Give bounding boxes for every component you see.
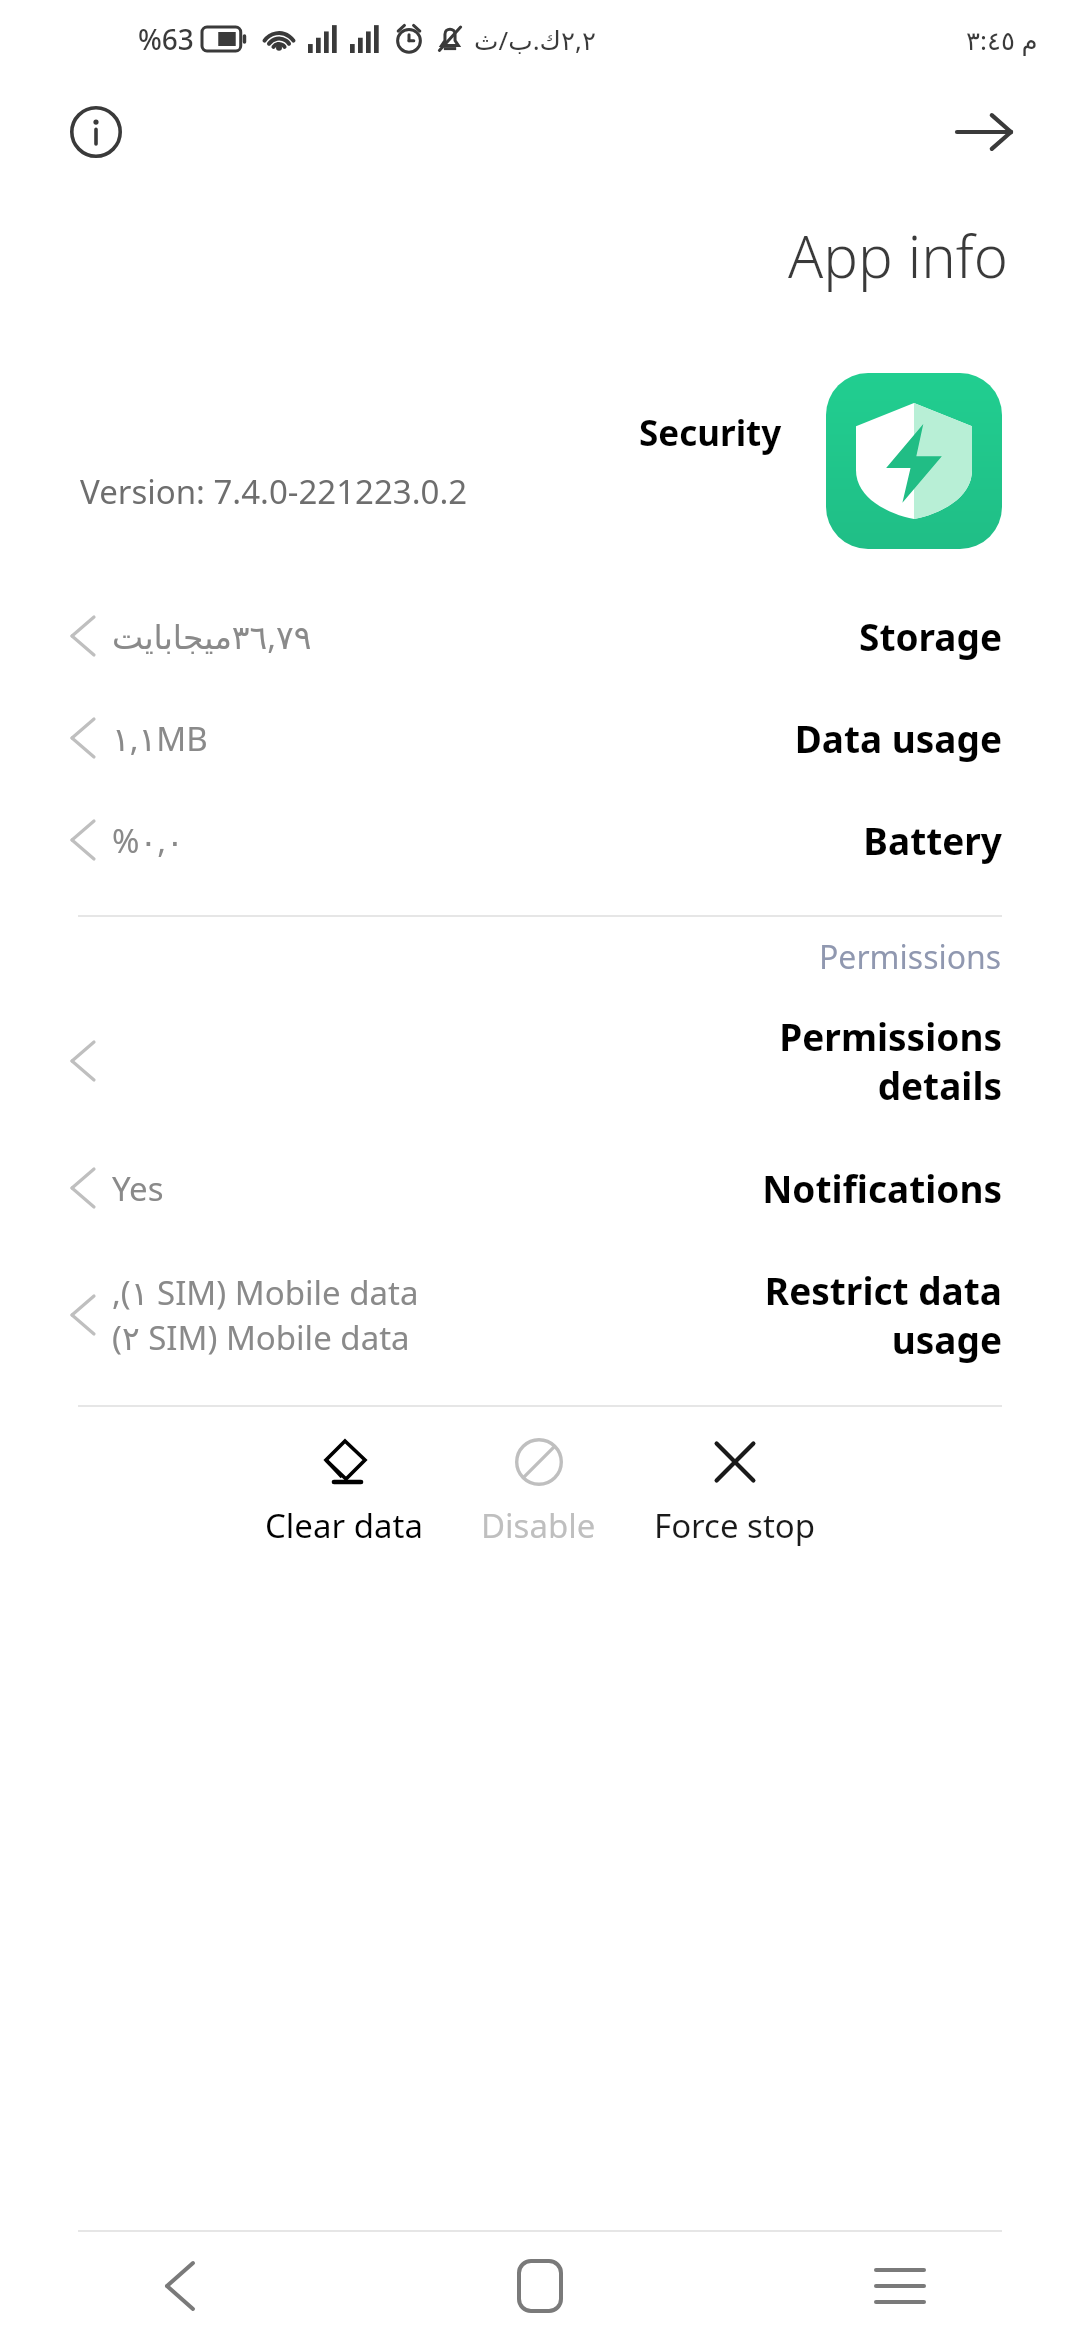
- staticText: م ٣:٤٥: [966, 22, 1038, 57]
- staticText: Security: [639, 409, 782, 457]
- staticText: Restrict data usage: [764, 1265, 1002, 1365]
- staticText: Storage: [858, 611, 1002, 661]
- button[interactable]: ,(١ SIM) Mobile data (٢ SIM) Mobile data: [0, 1239, 1080, 1391]
- button[interactable]: Home: [360, 2232, 720, 2340]
- staticText: Battery: [863, 815, 1002, 865]
- button[interactable]: Force stop: [648, 1431, 822, 1552]
- staticText: Notifications: [762, 1163, 1002, 1213]
- staticText: Yes: [112, 1166, 164, 1211]
- staticText: ٢,٢ك.ب/ث: [474, 22, 596, 57]
- button[interactable]: Disable: [475, 1431, 602, 1552]
- button[interactable]: Clear data: [259, 1431, 429, 1552]
- staticText: Clear data: [265, 1503, 423, 1548]
- button[interactable]: Yes: [0, 1137, 1080, 1239]
- button[interactable]: Recents: [720, 2232, 1080, 2340]
- button[interactable]: App details: [48, 84, 144, 180]
- staticText: ١,١MB: [112, 716, 208, 761]
- staticText: ٣٦,٧٩ميجابايت: [112, 614, 312, 659]
- button[interactable]: Security app icon: [826, 373, 1002, 549]
- button[interactable]: Permissions details: [0, 985, 1080, 1137]
- button[interactable]: ٣٦,٧٩ميجابايت: [0, 585, 1080, 687]
- button[interactable]: ١,١MB: [0, 687, 1080, 789]
- staticText: Force stop: [654, 1503, 816, 1548]
- staticText: ,(١ SIM) Mobile data (٢ SIM) Mobile data: [112, 1270, 419, 1360]
- staticText: %63: [138, 20, 194, 58]
- staticText: %٠,٠: [112, 818, 184, 863]
- button[interactable]: Back: [936, 84, 1032, 180]
- staticText: App info: [788, 216, 1008, 295]
- button[interactable]: Back: [0, 2232, 360, 2340]
- button[interactable]: %٠,٠: [0, 789, 1080, 891]
- staticText: Data usage: [794, 713, 1002, 763]
- staticText: Version: 7.4.0-221223.0.2: [80, 469, 468, 514]
- staticText: Disable: [481, 1503, 596, 1548]
- staticText: Permissions details: [779, 1011, 1002, 1111]
- staticText: Permissions: [819, 935, 1002, 979]
